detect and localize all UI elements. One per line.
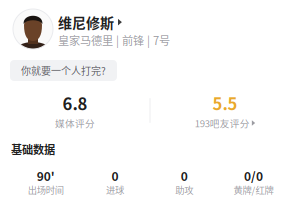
- staticText: 193吧友评分: [195, 116, 250, 130]
- button[interactable]: 5.5: [150, 91, 300, 130]
- staticText: 黄牌/红牌: [233, 183, 273, 196]
- staticText: 出场时间: [28, 183, 64, 196]
- button[interactable]: 6.8: [0, 91, 150, 130]
- staticText: 你就要一个人打完?: [21, 63, 106, 78]
- staticText: 0: [181, 167, 188, 184]
- staticText: 0/0: [244, 167, 263, 184]
- staticText: 0: [111, 167, 118, 184]
- staticText: 助攻: [175, 183, 193, 196]
- staticText: 维尼修斯: [58, 12, 114, 32]
- staticText: 6.8: [62, 91, 87, 115]
- staticText: 基础数据: [11, 141, 55, 157]
- staticText: 90': [37, 167, 55, 184]
- staticText: 进球: [106, 183, 124, 196]
- staticText: 5.5: [212, 91, 237, 115]
- staticText: 皇家马德里 | 前锋 | 7号: [58, 32, 170, 48]
- button[interactable]: 维尼修斯: [0, 9, 300, 49]
- staticText: 媒体评分: [55, 116, 95, 130]
